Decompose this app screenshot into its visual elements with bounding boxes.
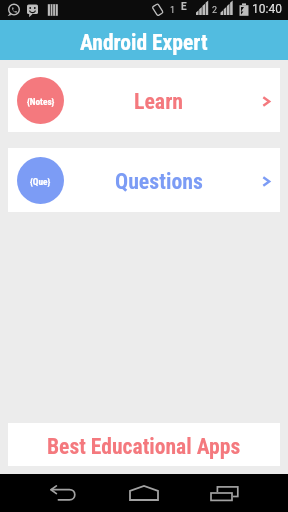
button[interactable]: Back: [24, 474, 104, 512]
button[interactable]: {Notes}: [8, 68, 280, 132]
staticText: 2: [212, 5, 218, 16]
staticText: E: [181, 1, 187, 13]
staticText: 1: [170, 5, 176, 16]
staticText: Android Expert: [80, 30, 208, 55]
button[interactable]: Recent apps: [184, 474, 264, 512]
staticText: 10:40: [252, 2, 282, 16]
staticText: Best Educational Apps: [47, 434, 241, 459]
button[interactable]: Home: [104, 474, 184, 512]
button[interactable]: Best Educational Apps: [8, 423, 280, 466]
button[interactable]: {Que}: [8, 148, 280, 212]
staticText: Questions: [115, 169, 203, 195]
staticText: {Notes}: [27, 96, 55, 107]
staticText: Learn: [134, 89, 184, 115]
staticText: {Que}: [30, 176, 51, 187]
